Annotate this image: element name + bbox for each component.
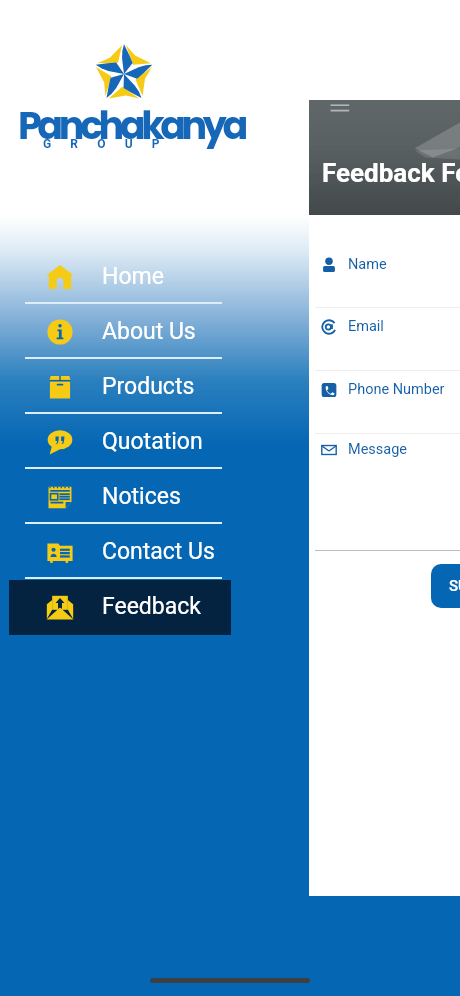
staticText: About Us [102, 318, 196, 345]
staticText: Name [348, 256, 387, 273]
button[interactable] [9, 580, 231, 635]
staticText: Feedback [102, 593, 201, 620]
staticText: Notices [102, 483, 181, 510]
staticText: Contact Us [102, 538, 215, 565]
button[interactable]: Quotation [0, 414, 240, 469]
staticText: Quotation [102, 428, 203, 455]
staticText: Feedback Form [322, 158, 460, 188]
button[interactable]: Name [309, 246, 460, 283]
button[interactable]: Email [309, 308, 460, 345]
staticText: Panchakanya [18, 99, 244, 152]
button[interactable]: Feedback [0, 579, 240, 634]
button[interactable]: Message [309, 434, 460, 465]
staticText: Phone Number [348, 381, 445, 398]
button[interactable]: Products [0, 359, 240, 414]
button[interactable]: Phone Number [309, 371, 460, 408]
staticText: SUBMIT [449, 577, 460, 595]
staticText: Email [348, 318, 384, 335]
button[interactable]: Notices [0, 469, 240, 524]
staticText: G R O U P [43, 137, 168, 151]
button[interactable]: SUBMIT [431, 564, 460, 608]
staticText: Home [102, 263, 164, 290]
staticText: Products [102, 373, 195, 400]
button[interactable]: About Us [0, 304, 240, 359]
staticText: Message [348, 441, 408, 458]
button[interactable]: Home [0, 249, 240, 304]
button[interactable]: Contact Us [0, 524, 240, 579]
button[interactable]: Open navigation drawer [321, 100, 357, 136]
